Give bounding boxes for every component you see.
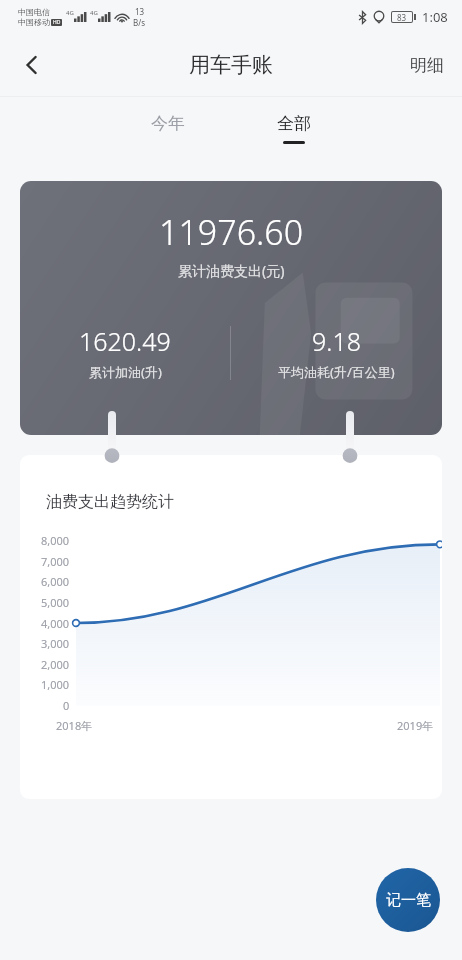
staticText: 11976.60 [159, 209, 304, 255]
button[interactable]: 全部 [261, 111, 327, 146]
staticText: 3,000 [41, 636, 70, 651]
staticText: B/s [133, 17, 146, 28]
staticText: 2019年 [397, 718, 434, 733]
staticText: 油费支出趋势统计 [46, 492, 174, 512]
button[interactable]: 11976.60 [20, 181, 442, 435]
staticText: 平均油耗(升/百公里) [278, 363, 395, 381]
button[interactable]: 明细 [400, 47, 454, 84]
staticText: 83 [397, 12, 407, 22]
staticText: 用车手账 [189, 52, 273, 78]
staticText: 1620.49 [79, 324, 171, 358]
button[interactable]: 油费支出趋势统计 [20, 455, 442, 799]
staticText: 13 [135, 6, 145, 17]
staticText: 累计加油(升) [89, 363, 162, 381]
staticText: 明细 [410, 55, 444, 76]
staticText: 2018年 [56, 718, 93, 733]
staticText: 1,000 [41, 677, 70, 692]
staticText: 0 [63, 698, 70, 713]
staticText: 中国移动 [18, 17, 50, 27]
staticText: 今年 [151, 113, 185, 134]
button[interactable]: 返回 [6, 39, 58, 91]
staticText: 累计油费支出(元) [178, 261, 285, 280]
staticText: 记一笔 [386, 891, 431, 910]
button[interactable]: 记一笔 [376, 868, 440, 932]
staticText: HD [53, 19, 61, 26]
staticText: 2,000 [41, 657, 70, 672]
staticText: 4G [90, 9, 98, 17]
staticText: 全部 [277, 113, 311, 134]
staticText: 8,000 [41, 533, 70, 548]
staticText: 9.18 [312, 324, 361, 358]
staticText: 7,000 [41, 554, 70, 569]
staticText: 5,000 [41, 595, 70, 610]
staticText: 4G [66, 9, 74, 17]
staticText: 1:08 [422, 8, 448, 26]
staticText: 6,000 [41, 574, 70, 589]
staticText: 4,000 [41, 616, 70, 631]
button[interactable]: 今年 [135, 111, 201, 146]
staticText: 中国电信 [18, 7, 50, 17]
